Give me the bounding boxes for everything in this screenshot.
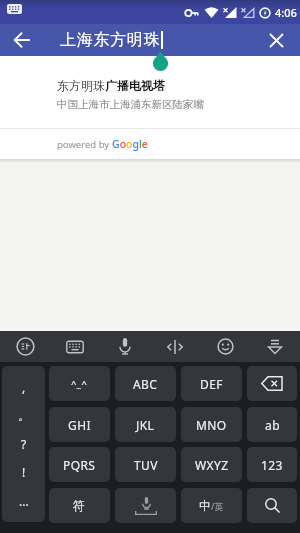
staticText: 中/英	[199, 498, 224, 513]
button[interactable]: ABC	[115, 366, 176, 401]
button[interactable]	[247, 366, 297, 401]
button[interactable]	[50, 331, 100, 362]
staticText: ABC	[133, 376, 158, 392]
staticText: ?	[21, 436, 27, 452]
staticText: 东方明珠广播电视塔	[57, 78, 165, 93]
button[interactable]: WXYZ	[181, 447, 242, 482]
staticText: ...	[19, 493, 29, 509]
staticText: 中国上海市上海浦东新区陆家嘴	[57, 98, 204, 111]
button[interactable]: 东方明珠广播电视塔	[0, 56, 300, 128]
staticText: ,	[22, 379, 26, 395]
staticText: MNO	[196, 417, 227, 433]
button[interactable]	[150, 331, 200, 362]
button[interactable]	[0, 331, 50, 362]
staticText: TUV	[134, 457, 158, 473]
button[interactable]	[250, 331, 300, 362]
staticText: 。	[18, 408, 30, 423]
button[interactable]: TUV	[115, 447, 176, 482]
staticText: 上海东方明珠	[60, 30, 161, 50]
button[interactable]: JKL	[115, 407, 176, 442]
button[interactable]: ab	[247, 407, 297, 442]
staticText: WXYZ	[195, 457, 229, 473]
button[interactable]	[115, 488, 176, 523]
staticText: 4:06	[275, 5, 297, 20]
button[interactable]: DEF	[181, 366, 242, 401]
button[interactable]	[100, 331, 150, 362]
staticText: ^_^	[71, 377, 88, 390]
button[interactable]: ^_^	[49, 366, 110, 401]
button[interactable]	[264, 28, 288, 52]
button[interactable]	[200, 331, 250, 362]
staticText: PQRS	[63, 457, 96, 473]
staticText: ab	[265, 417, 280, 433]
button[interactable]: PQRS	[49, 447, 110, 482]
button[interactable]	[9, 27, 35, 53]
staticText: Google	[112, 137, 148, 151]
staticText: 符	[73, 498, 86, 513]
button[interactable]: ,	[2, 366, 45, 522]
staticText: powered by	[57, 138, 112, 151]
button[interactable]: MNO	[181, 407, 242, 442]
button[interactable]	[247, 488, 297, 523]
button[interactable]: GHI	[49, 407, 110, 442]
staticText: GHI	[68, 417, 91, 433]
button[interactable]: 中/英	[181, 488, 242, 523]
button[interactable]: 符	[49, 488, 110, 523]
staticText: JKL	[136, 417, 155, 433]
button[interactable]: 123	[247, 447, 297, 482]
staticText: DEF	[200, 376, 223, 392]
staticText: !	[22, 464, 26, 480]
staticText: 123	[261, 457, 283, 473]
